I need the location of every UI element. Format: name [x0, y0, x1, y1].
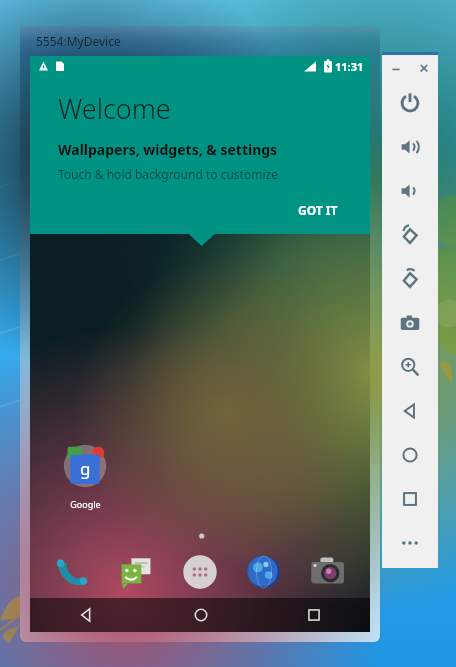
staticText: 5554:MyDevice: [36, 33, 121, 49]
staticText: Google: [70, 498, 101, 510]
button[interactable]: Zoom: [382, 345, 438, 389]
staticText: g: [80, 457, 91, 480]
staticText: Touch & hold background to customize: [58, 166, 278, 182]
staticText: Welcome: [58, 90, 171, 127]
button[interactable]: Apps: [168, 546, 232, 598]
button[interactable]: Overview: [382, 477, 438, 521]
button[interactable]: g: [54, 443, 116, 524]
button[interactable]: Rotate right: [382, 257, 438, 301]
button[interactable]: Camera: [296, 546, 360, 598]
button[interactable]: Back: [382, 389, 438, 433]
staticText: Wallpapers, widgets, & settings: [58, 140, 278, 159]
button[interactable]: Messaging: [104, 546, 168, 598]
button[interactable]: Take screenshot: [382, 301, 438, 345]
button[interactable]: More: [382, 521, 438, 565]
button[interactable]: Recents: [257, 598, 370, 632]
button[interactable]: Home: [144, 598, 257, 632]
button[interactable]: Close: [410, 55, 438, 81]
button[interactable]: Rotate left: [382, 213, 438, 257]
staticText: GOT IT: [298, 202, 338, 218]
button[interactable]: Home: [382, 433, 438, 477]
button[interactable]: Power: [382, 81, 438, 125]
button[interactable]: GOT IT: [288, 196, 348, 224]
button[interactable]: Phone: [40, 546, 104, 598]
button[interactable]: Browser: [232, 546, 296, 598]
staticText: 11:31: [335, 59, 364, 74]
button[interactable]: Minimize: [382, 55, 410, 81]
button[interactable]: Back: [30, 598, 144, 632]
button[interactable]: Volume up: [382, 125, 438, 169]
button[interactable]: Volume down: [382, 169, 438, 213]
